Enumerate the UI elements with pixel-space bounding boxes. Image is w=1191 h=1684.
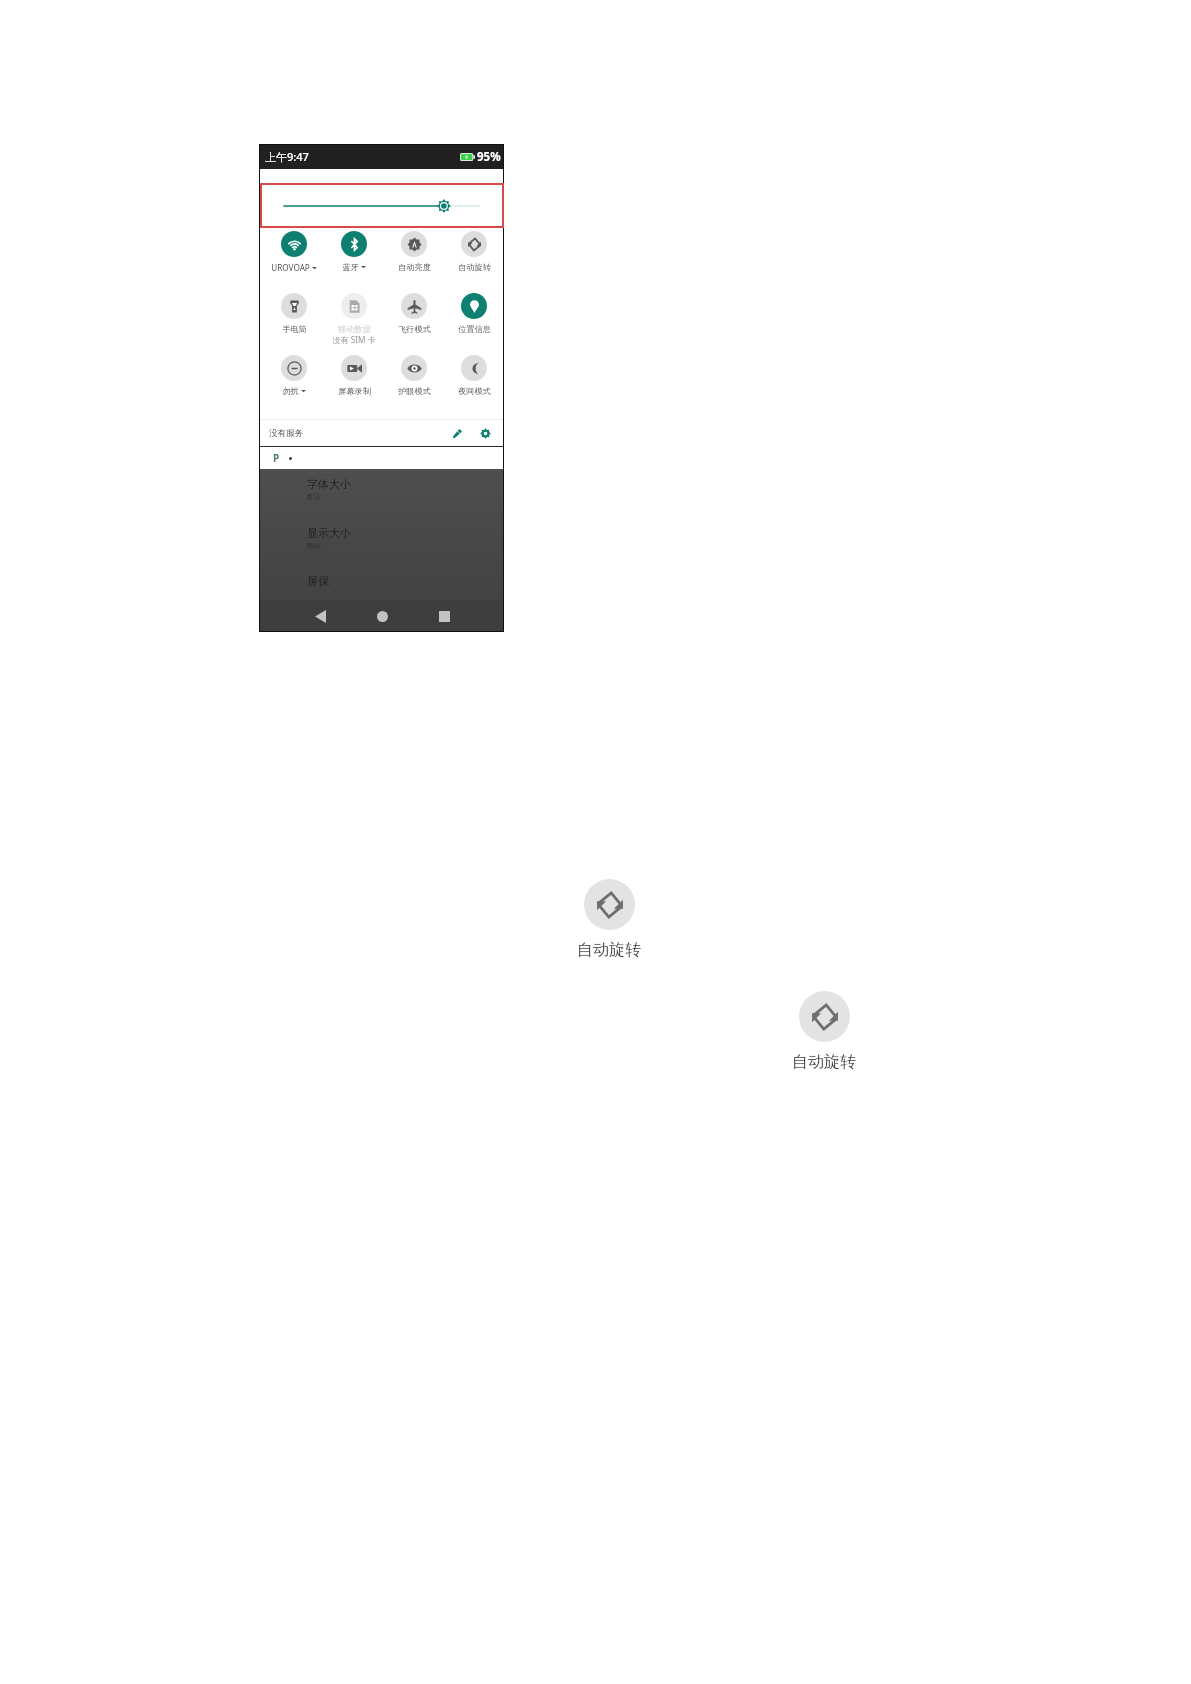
staticText: 护眼模式 xyxy=(398,386,431,396)
staticText: 95% xyxy=(477,149,501,165)
staticText: 手电筒 xyxy=(282,324,307,334)
button[interactable]: 位置信息 xyxy=(444,289,504,351)
staticText: 夜间模式 xyxy=(458,386,491,396)
button[interactable]: 自动旋转 xyxy=(577,879,641,960)
staticText: 飞行模式 xyxy=(398,324,431,334)
button[interactable]: 夜间模式 xyxy=(444,351,504,413)
button[interactable]: 屏幕录制 xyxy=(324,351,384,413)
staticText: UROVOAP xyxy=(271,262,310,273)
button[interactable]: UROVOAP xyxy=(264,227,324,289)
button[interactable]: 手电筒 xyxy=(264,289,324,351)
staticText: 自动亮度 xyxy=(398,262,431,272)
staticText: 显示大小 xyxy=(307,526,351,540)
staticText: 自动旋转 xyxy=(577,940,641,960)
button[interactable]: Home xyxy=(351,600,413,632)
staticText: 勿扰 xyxy=(282,386,299,396)
button[interactable]: Back xyxy=(289,600,351,632)
staticText: 屏幕录制 xyxy=(338,386,371,396)
staticText: 没有 SIM 卡 xyxy=(332,334,376,345)
staticText: 蓝牙 xyxy=(342,262,359,272)
button[interactable]: Edit xyxy=(449,425,465,441)
button[interactable]: Recents xyxy=(413,600,475,632)
button[interactable]: 蓝牙 xyxy=(324,227,384,289)
staticText: 默认 xyxy=(307,492,321,501)
staticText: 屏保 xyxy=(307,574,329,588)
staticText: 位置信息 xyxy=(458,324,491,334)
staticText: 字体大小 xyxy=(307,477,351,491)
staticText: 上午9:47 xyxy=(265,149,309,164)
staticText: P xyxy=(273,451,280,465)
staticText: 自动旋转 xyxy=(792,1052,856,1072)
button[interactable]: 显示大小 xyxy=(307,526,504,550)
staticText: 默认 xyxy=(307,541,321,550)
button[interactable]: 自动旋转 xyxy=(444,227,504,289)
button[interactable]: 自动旋转 xyxy=(792,991,856,1072)
staticText: 没有服务 xyxy=(269,428,304,439)
button[interactable]: 勿扰 xyxy=(264,351,324,413)
button[interactable]: Settings xyxy=(477,425,493,441)
button[interactable]: 移动数据 xyxy=(324,289,384,351)
button[interactable]: 护眼模式 xyxy=(384,351,444,413)
button[interactable]: 自动亮度 xyxy=(384,227,444,289)
button[interactable]: 字体大小 xyxy=(307,477,504,501)
staticText: 移动数据 xyxy=(338,324,371,334)
button[interactable]: 飞行模式 xyxy=(384,289,444,351)
staticText: 自动旋转 xyxy=(458,262,491,272)
